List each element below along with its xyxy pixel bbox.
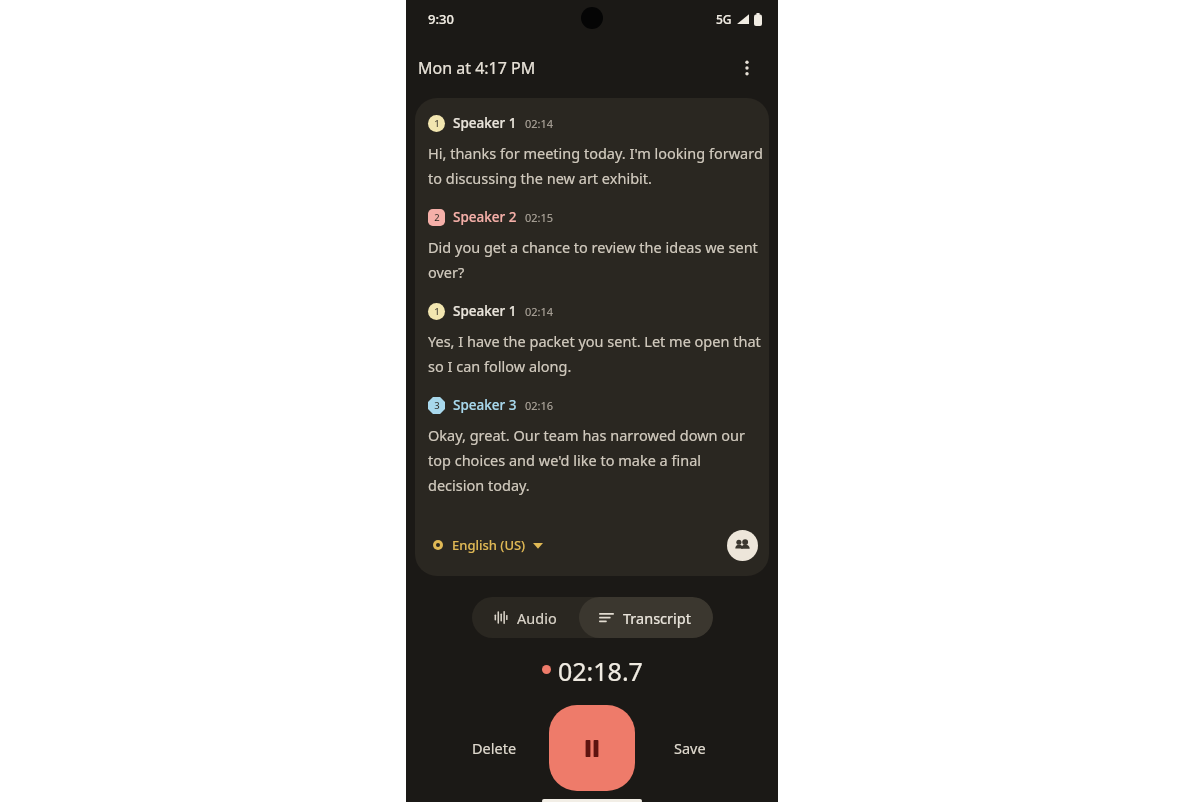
staticText: Speaker 3 — [453, 396, 517, 414]
button[interactable]: Save — [664, 730, 716, 766]
staticText: 02:14 — [525, 304, 554, 319]
staticText: Speaker 2 — [453, 208, 517, 226]
button[interactable]: 2 — [428, 206, 769, 228]
button[interactable]: Speakers — [727, 530, 758, 561]
staticText: so I can follow along. — [428, 356, 572, 376]
staticText: 02:15 — [525, 210, 554, 225]
staticText: 02:16 — [525, 398, 554, 413]
button[interactable]: Pause recording — [549, 705, 635, 791]
button[interactable]: Audio — [472, 597, 579, 638]
staticText: Transcript — [623, 608, 691, 628]
staticText: 1 — [434, 305, 440, 318]
staticText: 2 — [434, 211, 440, 224]
button[interactable]: 1 — [428, 300, 769, 322]
staticText: 3 — [434, 399, 440, 412]
staticText: Did you get a chance to review the ideas… — [428, 237, 758, 257]
staticText: 9:30 — [428, 10, 454, 28]
button[interactable]: Delete — [462, 730, 527, 766]
staticText: to discussing the new art exhibit. — [428, 168, 652, 188]
staticText: Speaker 1 — [453, 302, 517, 320]
staticText: 1 — [434, 117, 440, 130]
staticText: 02:18.7 — [558, 654, 643, 684]
staticText: 5G — [716, 11, 732, 27]
staticText: Hi, thanks for meeting today. I'm lookin… — [428, 143, 763, 163]
staticText: Okay, great. Our team has narrowed down … — [428, 425, 745, 445]
staticText: over? — [428, 262, 465, 282]
button[interactable]: Transcript — [579, 597, 713, 638]
staticText: English (US) — [452, 536, 526, 554]
staticText: Yes, I have the packet you sent. Let me … — [428, 331, 761, 351]
staticText: Audio — [517, 608, 557, 628]
button[interactable]: English (US) — [429, 532, 547, 558]
staticText: 02:14 — [525, 116, 554, 131]
button[interactable]: 1 — [428, 112, 769, 134]
button[interactable]: More options — [730, 51, 764, 85]
staticText: Mon at 4:17 PM — [418, 57, 536, 79]
staticText: decision today. — [428, 475, 530, 495]
staticText: Speaker 1 — [453, 114, 517, 132]
staticText: top choices and we'd like to make a fina… — [428, 450, 702, 470]
button[interactable]: 3 — [428, 394, 769, 416]
